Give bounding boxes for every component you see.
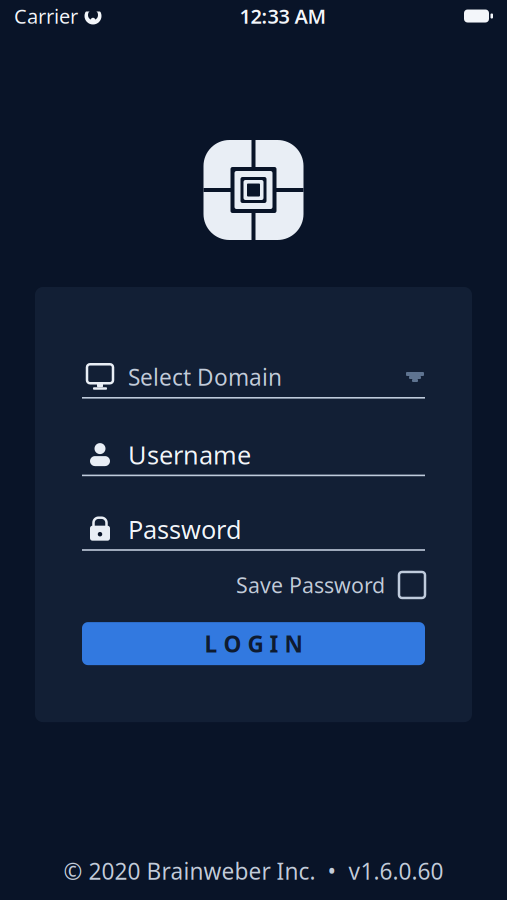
staticText: Save Password — [236, 571, 385, 599]
button[interactable]: Username — [82, 435, 425, 476]
button[interactable]: Save Password — [236, 571, 425, 599]
staticText: Password — [128, 512, 242, 546]
staticText: Username — [128, 438, 251, 471]
staticText: © 2020 Brainweber Inc. • v1.6.0.60 — [63, 856, 443, 886]
button[interactable]: Select Domain — [82, 357, 425, 399]
staticText: L O G I N — [204, 629, 302, 659]
button[interactable]: L O G I N — [82, 622, 425, 665]
staticText: Select Domain — [128, 362, 282, 392]
button[interactable]: Password — [82, 509, 425, 551]
staticText: 12:33 AM — [239, 3, 326, 29]
staticText: Carrier — [14, 3, 78, 29]
